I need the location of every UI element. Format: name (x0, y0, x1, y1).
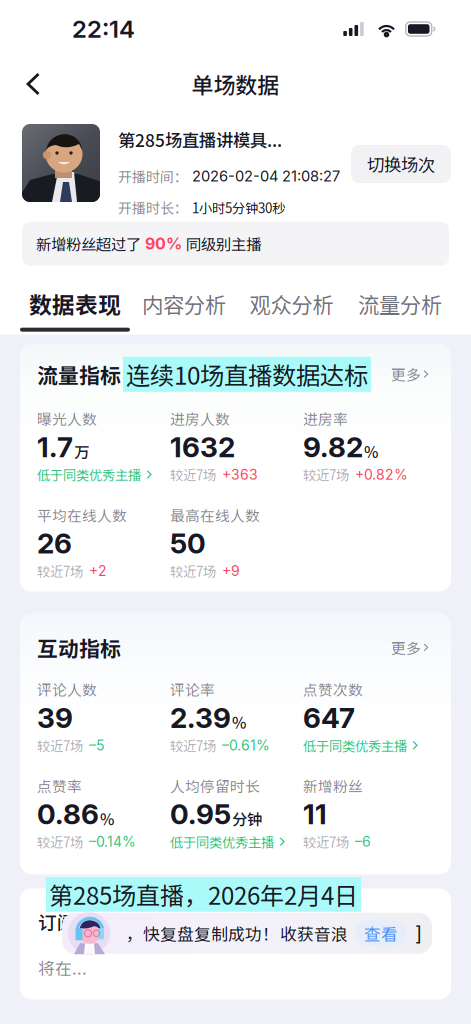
staticText: 647 (303, 701, 355, 735)
staticText: 新增粉丝 (303, 775, 363, 796)
staticText: +0.82% (355, 466, 408, 483)
staticText: 互动指标 (37, 633, 121, 662)
button[interactable]: 观众分析 (238, 287, 345, 321)
staticText: 低于同类优秀主播 (170, 832, 274, 851)
button[interactable]: 内容分析 (130, 287, 238, 321)
button[interactable]: 数据表现 (20, 287, 130, 321)
staticText: 更多 (391, 637, 421, 658)
staticText: 曝光人数 (37, 408, 97, 429)
staticText: 第285场直播，2026年2月4日 (49, 877, 358, 912)
staticText: 较近7场 (170, 561, 216, 581)
button[interactable]: 更多 (391, 637, 429, 658)
button[interactable]: 切换场次 (351, 145, 451, 183)
staticText: 1.7 (37, 430, 73, 464)
staticText: 内容分析 (142, 288, 226, 319)
staticText: 39 (37, 701, 73, 735)
staticText: 点赞次数 (303, 679, 363, 700)
staticText: –5 (89, 737, 105, 754)
staticText: ，快复盘复制成功！ (126, 921, 279, 945)
staticText: 将在... (38, 955, 87, 979)
staticText: 查看 (364, 921, 398, 945)
staticText: 新增粉丝超过了 (36, 232, 141, 255)
staticText: 9.82 (303, 430, 363, 464)
staticText: 90% (145, 234, 182, 253)
staticText: % (232, 711, 246, 733)
staticText: 评论率 (170, 679, 215, 700)
staticText: 分钟 (232, 807, 262, 830)
staticText: 11 (303, 797, 327, 831)
staticText: 数据表现 (29, 287, 121, 320)
staticText: 较近7场 (170, 736, 216, 755)
staticText: 流量指标 (37, 359, 121, 389)
staticText: 收获音浪 (280, 921, 348, 945)
staticText: 评论人数 (37, 679, 97, 700)
staticText: 切换场次 (367, 151, 435, 177)
staticText: 0.95 (170, 797, 231, 831)
staticText: 2026-02-04 21:08:27 (192, 167, 340, 185)
staticText: 26 (37, 526, 72, 560)
staticText: 万 (74, 440, 89, 462)
staticText: –6 (355, 833, 371, 850)
staticText: 人均停留时长 (170, 775, 260, 796)
staticText: 开播时长： (118, 197, 188, 218)
staticText: 开播时间： (118, 166, 188, 186)
staticText: % (364, 440, 378, 462)
staticText: 点赞率 (37, 775, 82, 796)
staticText: 2.39 (170, 701, 231, 735)
button[interactable]: Back (14, 62, 53, 105)
staticText: 同级别主播 (186, 232, 261, 255)
button[interactable]: 流量分析 (345, 287, 455, 321)
staticText: ] (415, 921, 422, 945)
staticText: +9 (222, 562, 240, 579)
staticText: 低于同类优秀主播 (303, 736, 407, 755)
staticText: +2 (89, 562, 107, 579)
staticText: 0.86 (37, 797, 99, 831)
staticText: 平均在线人数 (37, 504, 127, 525)
staticText: 订阅直播复盘的内容 (38, 908, 209, 935)
staticText: 第285场直播讲模具... (118, 127, 282, 152)
staticText: 较近7场 (37, 832, 83, 851)
staticText: % (100, 807, 114, 830)
staticText: –0.61% (222, 737, 270, 754)
staticText: –0.14% (89, 833, 136, 850)
staticText: 较近7场 (37, 736, 83, 755)
staticText: 较近7场 (303, 465, 349, 484)
staticText: 最高在线人数 (170, 504, 260, 525)
staticText: 1632 (170, 430, 235, 464)
staticText: 更多 (391, 364, 421, 385)
staticText: 单场数据 (191, 68, 279, 100)
staticText: 较近7场 (170, 465, 216, 484)
staticText: 观众分析 (249, 288, 333, 319)
button[interactable]: 查看 (348, 920, 407, 946)
staticText: 较近7场 (303, 832, 349, 851)
staticText: 进房率 (303, 408, 348, 429)
staticText: 1小时5分钟30秒 (192, 198, 285, 217)
staticText: 较近7场 (37, 561, 83, 581)
staticText: +363 (222, 466, 258, 483)
staticText: 连续10场直播数据达标 (126, 357, 368, 392)
staticText: 流量分析 (358, 288, 442, 319)
staticText: 低于同类优秀主播 (37, 465, 141, 484)
staticText: 22:14 (72, 14, 135, 43)
staticText: 50 (170, 526, 206, 560)
staticText: 进房人数 (170, 408, 230, 429)
button[interactable]: 更多 (391, 364, 429, 385)
